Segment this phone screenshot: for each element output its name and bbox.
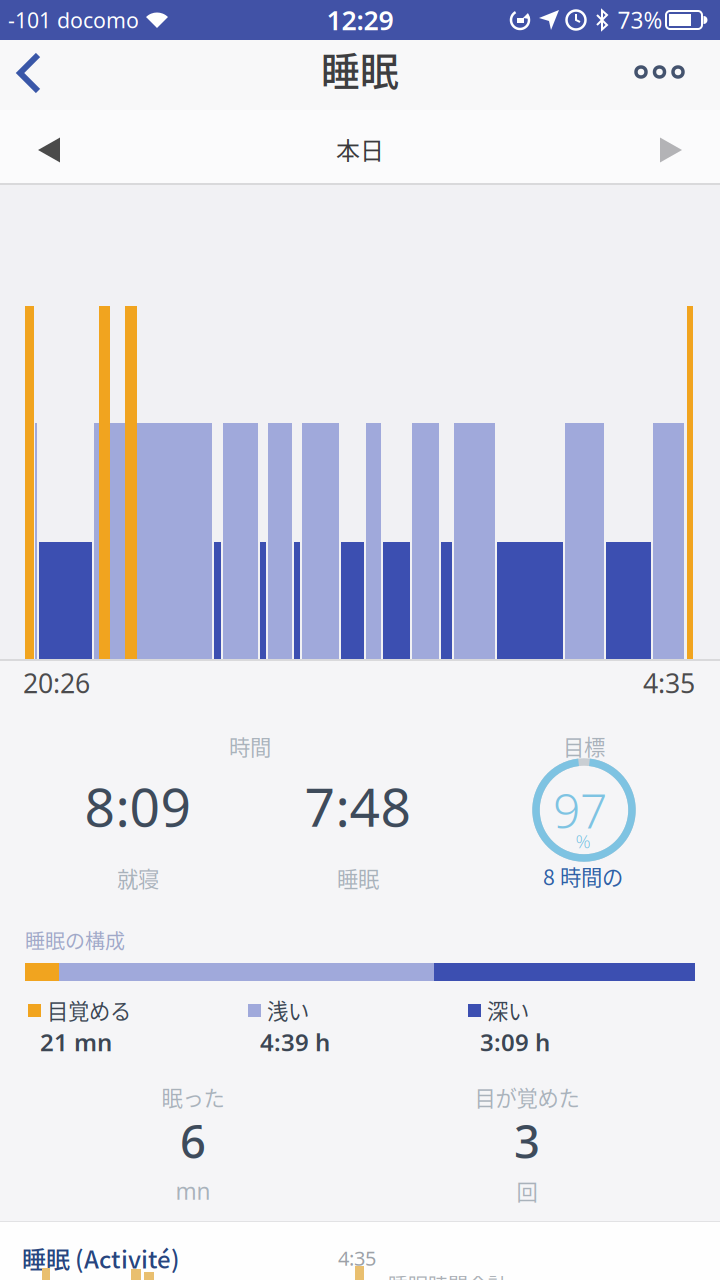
staticText: 20:26 <box>23 665 90 701</box>
staticText: -101 docomo <box>8 6 139 34</box>
staticText: 深い <box>487 995 529 1025</box>
button[interactable]: 睡眠 (Activité) <box>0 1222 720 1280</box>
staticText: mn <box>175 1176 210 1206</box>
staticText: 3:09 h <box>480 1026 550 1058</box>
staticText: 4:35 <box>338 1245 376 1271</box>
staticText: 7:48 <box>304 771 411 841</box>
staticText: 睡眠 <box>337 863 379 893</box>
staticText: 浅い <box>267 995 309 1025</box>
staticText: 73% <box>617 5 662 35</box>
button[interactable]: Previous day <box>28 127 70 172</box>
staticText: 睡眠 (Activité) <box>22 1241 180 1275</box>
staticText: 4:39 h <box>260 1026 330 1058</box>
staticText: 12:29 <box>326 2 393 38</box>
staticText: 睡眠の構成 <box>25 925 125 954</box>
staticText: 3 <box>514 1111 540 1171</box>
staticText: 6 <box>180 1111 206 1171</box>
button[interactable]: Back <box>14 45 58 101</box>
staticText: 目覚める <box>47 995 131 1025</box>
staticText: 眠った <box>161 1082 224 1112</box>
staticText: 目が覚めた <box>474 1082 579 1112</box>
staticText: 時間 <box>229 731 271 761</box>
button[interactable]: Next day <box>650 127 692 172</box>
staticText: 4:35 <box>643 665 695 701</box>
staticText: 21 mn <box>40 1026 112 1058</box>
staticText: 8 時間の <box>543 861 623 891</box>
staticText: 97 <box>553 778 607 842</box>
staticText: 睡眠時間合計 <box>388 1269 508 1280</box>
staticText: % <box>575 829 590 853</box>
button[interactable]: More <box>631 60 689 84</box>
staticText: 8:09 <box>84 771 191 841</box>
staticText: 睡眠 <box>321 41 399 97</box>
staticText: 回 <box>516 1176 537 1206</box>
staticText: 目標 <box>563 731 605 761</box>
staticText: 本日 <box>336 132 384 166</box>
staticText: 就寝 <box>117 863 159 893</box>
